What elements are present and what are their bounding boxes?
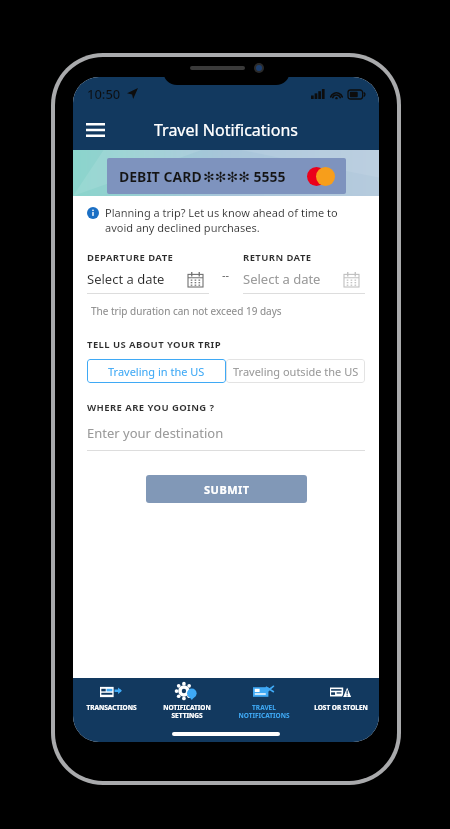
staticText: LOST OR STOLEN [314, 703, 368, 712]
staticText: TRANSACTIONS [86, 703, 137, 712]
button[interactable]: Select a date [87, 270, 209, 294]
button[interactable]: Select a date [243, 270, 365, 294]
staticText: DEBIT CARD [119, 167, 202, 186]
button[interactable]: NOTIFICATION SETTINGS [149, 678, 225, 726]
button[interactable]: DEBIT CARD [107, 158, 346, 194]
staticText: ✻✻✻✻ 5555 [203, 167, 286, 186]
staticText: The trip duration can not exceed 19 days [91, 304, 282, 318]
staticText: WHERE ARE YOU GOING ? [87, 401, 215, 414]
staticText: Travel Notifications [154, 119, 298, 141]
staticText: Traveling outside the US [233, 364, 359, 379]
staticText: Traveling in the US [108, 364, 205, 379]
staticText: -- [222, 267, 230, 282]
button[interactable]: Traveling in the US [87, 359, 226, 383]
staticText: Select a date [87, 270, 165, 288]
staticText: TELL US ABOUT YOUR TRIP [87, 338, 221, 351]
button[interactable]: Traveling outside the US [226, 359, 365, 383]
button[interactable]: LOST OR STOLEN [302, 678, 379, 726]
button[interactable]: TRANSACTIONS [73, 678, 149, 726]
button[interactable]: TRAVEL NOTIFICATIONS [225, 678, 302, 726]
staticText: TRAVEL NOTIFICATIONS [238, 703, 290, 720]
button[interactable]: Enter your destination [87, 424, 365, 451]
staticText: Enter your destination [87, 424, 224, 442]
staticText: Select a date [243, 270, 321, 288]
staticText: SUBMIT [204, 482, 250, 497]
staticText: NOTIFICATION SETTINGS [163, 703, 211, 720]
button[interactable]: SUBMIT [146, 475, 307, 503]
button[interactable]: Menu [77, 112, 113, 148]
staticText: DEPARTURE DATE [87, 251, 174, 264]
staticText: 10:50 [87, 85, 121, 103]
staticText: Planning a trip? Let us know ahead of ti… [105, 205, 365, 235]
staticText: RETURN DATE [243, 251, 312, 264]
